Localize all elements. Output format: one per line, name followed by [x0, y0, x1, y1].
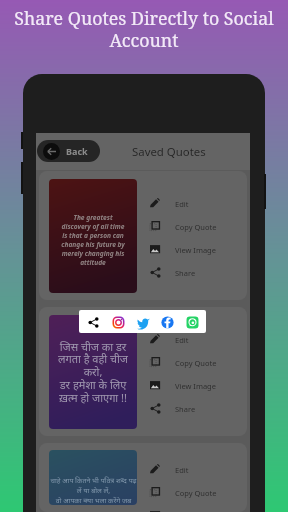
- staticText: Share: [175, 404, 196, 414]
- staticText: View Image: [175, 381, 216, 391]
- button[interactable]: Share: [86, 315, 100, 329]
- button[interactable]: Copy Quote: [150, 481, 247, 504]
- button[interactable]: Copy Quote: [150, 215, 247, 238]
- button[interactable]: View Image: [150, 504, 247, 512]
- button[interactable]: Facebook: [160, 315, 174, 329]
- button[interactable]: View Image: [150, 238, 247, 261]
- staticText: चाहे आप कितने भी पवित्र शब्द पढ़ लें या …: [50, 476, 137, 505]
- button[interactable]: The greatest discovery of all time is th…: [39, 171, 247, 300]
- staticText: जिस चीज का डर लगता है वही चीज करो, डर हम…: [58, 339, 128, 405]
- staticText: Copy Quote: [175, 358, 217, 368]
- button[interactable]: चाहे आप कितने भी पवित्र शब्द पढ़ लें या …: [39, 443, 247, 512]
- button[interactable]: Twitter: [136, 315, 150, 329]
- staticText: Share: [175, 268, 196, 278]
- staticText: Back: [66, 145, 88, 157]
- button[interactable]: Edit: [150, 458, 247, 481]
- staticText: Edit: [175, 335, 189, 345]
- staticText: The greatest discovery of all time is th…: [61, 213, 125, 267]
- button[interactable]: Edit: [150, 328, 247, 351]
- staticText: Saved Quotes: [132, 144, 206, 160]
- button[interactable]: Share: [150, 261, 247, 284]
- button[interactable]: View Image: [150, 374, 247, 397]
- button[interactable]: WhatsApp: [185, 315, 199, 329]
- button[interactable]: Edit: [150, 192, 247, 215]
- staticText: Edit: [175, 465, 189, 475]
- button[interactable]: Instagram: [111, 315, 125, 329]
- staticText: Share Quotes Directly to Social Account: [4, 6, 284, 52]
- button[interactable]: जिस चीज का डर लगता है वही चीज करो, डर हम…: [39, 307, 247, 436]
- staticText: View Image: [175, 245, 216, 255]
- button[interactable]: Back: [37, 140, 100, 162]
- staticText: Copy Quote: [175, 222, 217, 232]
- button[interactable]: Share: [150, 397, 247, 420]
- staticText: Copy Quote: [175, 488, 217, 498]
- button[interactable]: Copy Quote: [150, 351, 247, 374]
- staticText: Edit: [175, 199, 189, 209]
